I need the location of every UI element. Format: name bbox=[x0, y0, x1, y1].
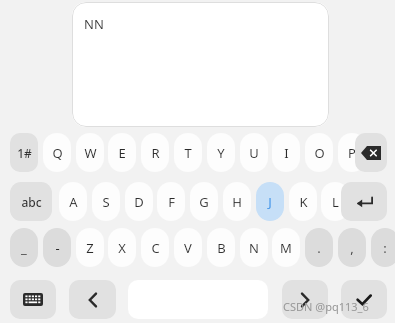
button[interactable]: M bbox=[272, 228, 300, 267]
button[interactable]: N bbox=[240, 228, 268, 267]
button[interactable]: X bbox=[108, 228, 136, 267]
button[interactable]: Enter bbox=[341, 182, 387, 221]
staticText: O bbox=[314, 144, 325, 162]
button[interactable]: Q bbox=[43, 133, 71, 172]
staticText: : bbox=[383, 239, 387, 257]
button[interactable]: Done bbox=[341, 280, 387, 319]
staticText: V bbox=[184, 239, 192, 257]
button[interactable]: . bbox=[305, 228, 333, 267]
button[interactable]: K bbox=[289, 182, 317, 221]
button[interactable]: D bbox=[125, 182, 153, 221]
staticText: L bbox=[332, 193, 339, 211]
staticText: , bbox=[350, 239, 354, 257]
button[interactable]: Next bbox=[282, 280, 328, 319]
button[interactable]: W bbox=[76, 133, 104, 172]
staticText: CSDN @pq113_6 bbox=[283, 299, 369, 314]
staticText: T bbox=[184, 144, 192, 162]
staticText: NN bbox=[84, 15, 104, 33]
button[interactable]: U bbox=[240, 133, 268, 172]
staticText: X bbox=[118, 239, 126, 257]
button[interactable]: V bbox=[174, 228, 202, 267]
staticText: E bbox=[118, 144, 126, 162]
button[interactable]: B bbox=[207, 228, 235, 267]
button[interactable]: Switch keyboard bbox=[10, 280, 56, 319]
button[interactable]: _ bbox=[10, 228, 38, 267]
button[interactable]: : bbox=[371, 228, 395, 267]
button[interactable]: Y bbox=[207, 133, 235, 172]
staticText: _ bbox=[21, 239, 27, 257]
staticText: - bbox=[55, 239, 60, 257]
staticText: Y bbox=[217, 144, 225, 162]
button[interactable]: F bbox=[157, 182, 185, 221]
staticText: Z bbox=[86, 239, 94, 257]
staticText: I bbox=[284, 144, 289, 162]
button[interactable]: I bbox=[272, 133, 300, 172]
button[interactable]: G bbox=[190, 182, 218, 221]
button[interactable]: J bbox=[256, 182, 284, 221]
button[interactable]: 1# bbox=[10, 133, 38, 172]
staticText: S bbox=[102, 193, 110, 211]
button[interactable]: A bbox=[59, 182, 87, 221]
button[interactable]: P bbox=[338, 133, 366, 172]
button[interactable]: O bbox=[305, 133, 333, 172]
staticText: N bbox=[249, 239, 259, 257]
staticText: H bbox=[232, 193, 242, 211]
staticText: K bbox=[299, 193, 308, 211]
staticText: C bbox=[151, 239, 160, 257]
button[interactable]: NN bbox=[72, 2, 329, 127]
staticText: J bbox=[268, 193, 272, 211]
staticText: P bbox=[348, 144, 356, 162]
staticText: F bbox=[168, 193, 175, 211]
button[interactable]: E bbox=[108, 133, 136, 172]
staticText: A bbox=[69, 193, 78, 211]
button[interactable]: T bbox=[174, 133, 202, 172]
button[interactable]: S bbox=[92, 182, 120, 221]
staticText: U bbox=[249, 144, 259, 162]
button[interactable]: C bbox=[141, 228, 169, 267]
button[interactable]: R bbox=[141, 133, 169, 172]
button[interactable]: Z bbox=[76, 228, 104, 267]
staticText: R bbox=[151, 144, 160, 162]
staticText: Q bbox=[52, 144, 63, 162]
staticText: abc bbox=[21, 194, 42, 210]
staticText: M bbox=[280, 239, 292, 257]
button[interactable]: L bbox=[321, 182, 349, 221]
staticText: B bbox=[217, 239, 226, 257]
staticText: W bbox=[84, 144, 97, 162]
staticText: G bbox=[199, 193, 209, 211]
button[interactable]: Previous bbox=[69, 280, 116, 319]
staticText: 1# bbox=[17, 145, 32, 161]
staticText: D bbox=[134, 193, 144, 211]
button[interactable]: , bbox=[338, 228, 366, 267]
button[interactable]: abc bbox=[10, 182, 52, 221]
staticText: . bbox=[317, 239, 321, 257]
button[interactable]: H bbox=[223, 182, 251, 221]
button[interactable]: Backspace bbox=[355, 133, 387, 172]
button[interactable]: - bbox=[43, 228, 71, 267]
